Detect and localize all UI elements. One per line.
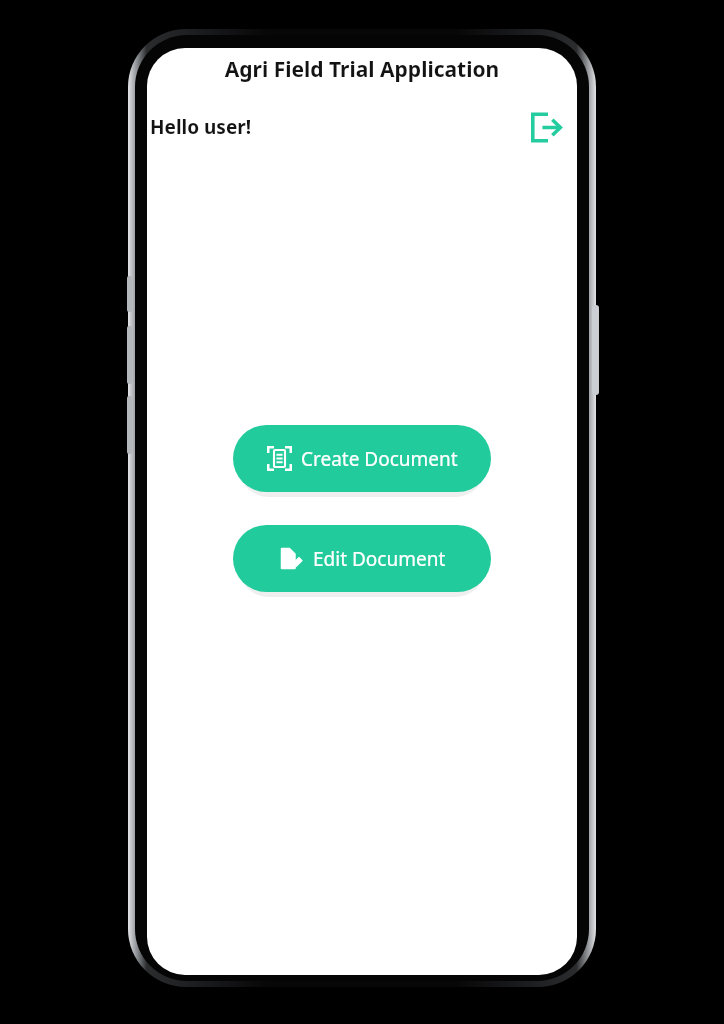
staticText: Agri Field Trial Application <box>147 55 577 84</box>
staticText: Create Document <box>301 446 458 472</box>
staticText: Edit Document <box>313 546 446 572</box>
button[interactable]: Edit Document <box>233 525 491 592</box>
button[interactable]: Create Document <box>233 425 491 492</box>
staticText: Hello user! <box>150 114 252 140</box>
button[interactable]: Log out <box>523 105 567 149</box>
